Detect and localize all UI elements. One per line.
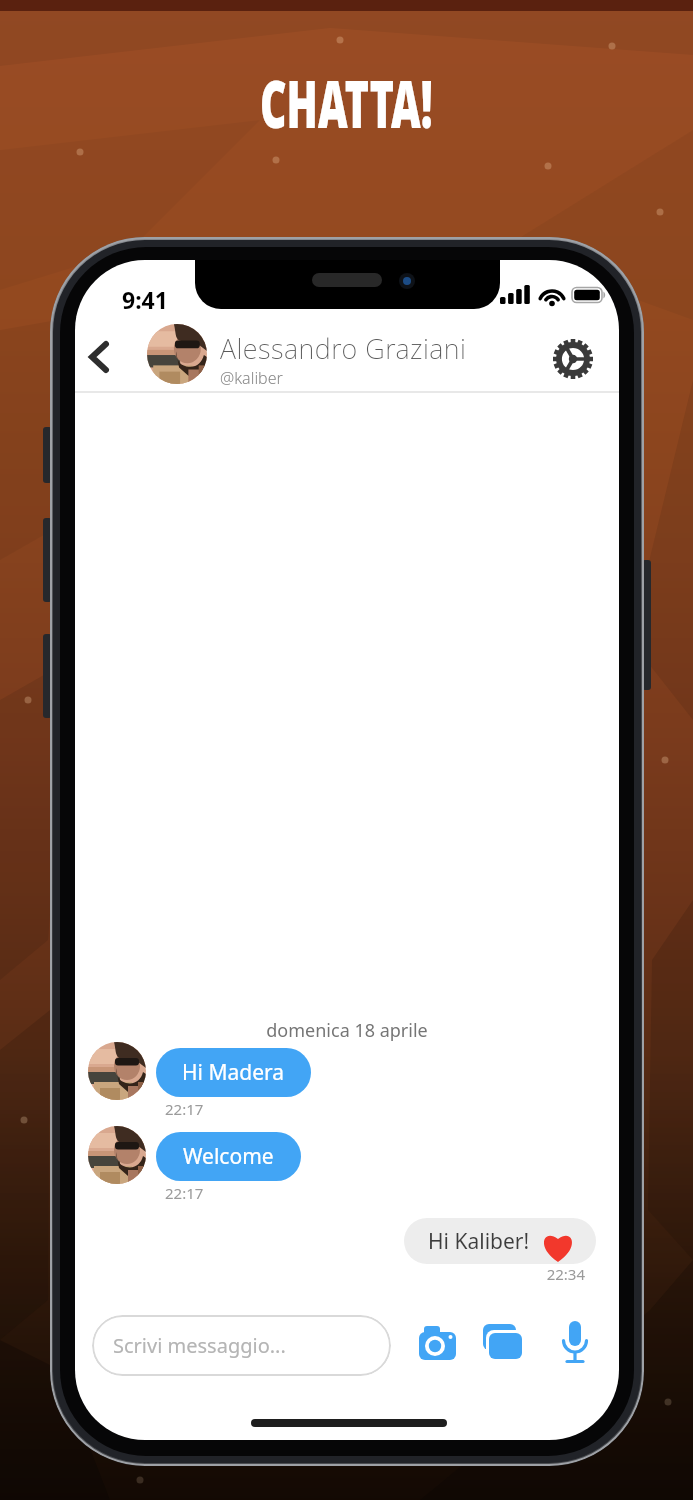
- staticText: Scrivi messaggio...: [113, 1332, 286, 1359]
- staticText: 22:17: [165, 1183, 204, 1203]
- button[interactable]: Welcome: [156, 1132, 301, 1181]
- staticText: Welcome: [183, 1142, 274, 1171]
- staticText: domenica 18 aprile: [75, 1018, 619, 1043]
- staticText: @kaliber: [220, 367, 283, 389]
- button[interactable]: [548, 334, 598, 384]
- staticText: 9:41: [122, 284, 168, 315]
- staticText: Hi Kaliber!: [428, 1227, 530, 1256]
- button[interactable]: Alessandro Graziani: [220, 330, 467, 389]
- button[interactable]: Hi Kaliber!: [404, 1218, 596, 1264]
- staticText: 22:34: [405, 1264, 585, 1284]
- button[interactable]: [561, 1320, 589, 1370]
- button[interactable]: [482, 1323, 528, 1369]
- staticText: 22:17: [165, 1099, 204, 1119]
- button[interactable]: [415, 1322, 459, 1366]
- staticText: CHATTA!: [260, 57, 433, 147]
- button[interactable]: [77, 332, 121, 382]
- staticText: Alessandro Graziani: [220, 330, 467, 367]
- staticText: Hi Madera: [182, 1058, 285, 1087]
- button[interactable]: Hi Madera: [156, 1048, 311, 1097]
- button[interactable]: Scrivi messaggio...: [92, 1315, 391, 1376]
